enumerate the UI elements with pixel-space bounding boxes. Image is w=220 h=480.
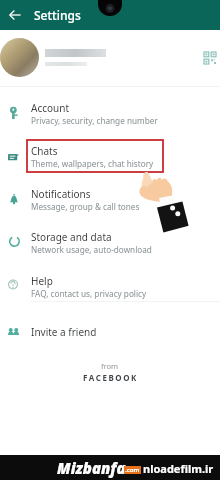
staticText: Theme, wallpapers, chat history: [31, 158, 154, 169]
staticText: Chats: [31, 144, 58, 158]
staticText: Settings: [34, 7, 81, 23]
staticText: Storage and data: [31, 230, 112, 244]
staticText: Account: [31, 101, 70, 115]
button[interactable]: My QR code: [196, 45, 220, 69]
staticText: FAQ, contact us, privacy policy: [31, 288, 147, 299]
staticText: Privacy, security, change number: [31, 115, 158, 126]
staticText: Invite a friend: [31, 325, 97, 339]
button[interactable]: My QR code: [0, 30, 220, 84]
button[interactable]: Account: [0, 93, 220, 135]
staticText: from: [101, 361, 119, 371]
staticText: Message, group & call tones: [31, 201, 140, 212]
staticText: Network usage, auto-download: [31, 244, 152, 255]
button[interactable]: Invite a friend: [0, 317, 220, 349]
staticText: nloadefilm.ir: [143, 461, 214, 476]
staticText: Help: [31, 274, 53, 288]
button[interactable]: Chats: [0, 136, 220, 178]
staticText: Mizbanfa: [57, 458, 126, 478]
staticText: .com: [125, 466, 140, 474]
button[interactable]: Back: [0, 0, 30, 30]
staticText: FACEBOOK: [83, 372, 138, 383]
button[interactable]: Notifications: [0, 179, 220, 221]
button[interactable]: Storage and data: [0, 222, 220, 264]
button[interactable]: Help: [0, 266, 220, 308]
staticText: Notifications: [31, 187, 91, 201]
